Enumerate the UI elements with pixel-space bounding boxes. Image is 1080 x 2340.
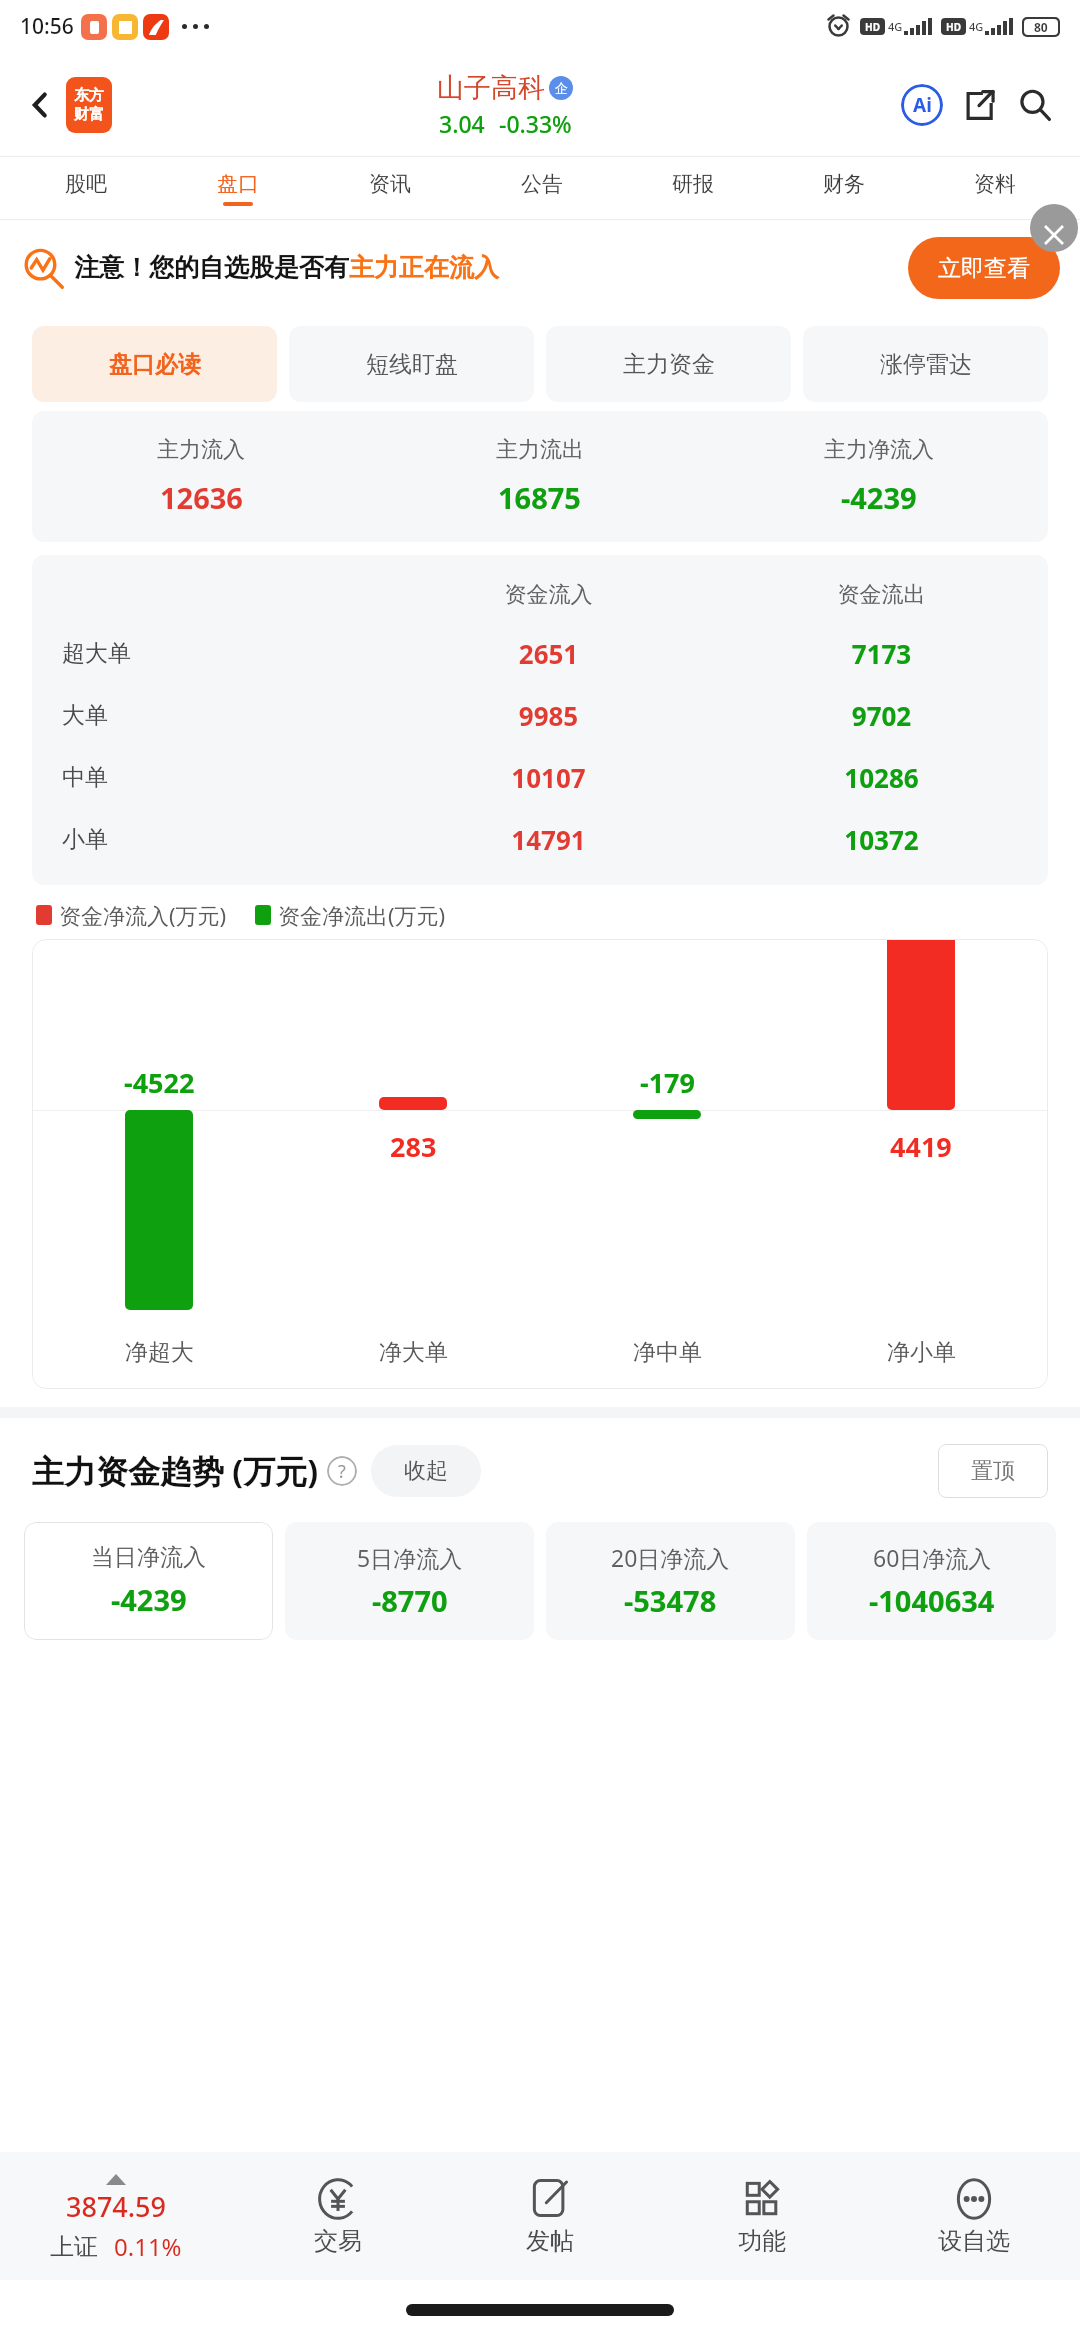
- staticText: 净大单: [379, 1338, 448, 1367]
- button[interactable]: 资讯: [314, 157, 466, 220]
- button[interactable]: 盘口: [162, 157, 314, 220]
- staticText: HD: [865, 20, 880, 34]
- button[interactable]: Help: [327, 1456, 357, 1486]
- button[interactable]: 超大单: [32, 636, 1048, 671]
- staticText: 主力正在流入: [349, 252, 499, 283]
- staticText: 资金流出: [715, 581, 1048, 609]
- button[interactable]: Search: [1012, 82, 1058, 128]
- button[interactable]: 大单: [32, 698, 1048, 733]
- button[interactable]: 短线盯盘: [289, 326, 534, 402]
- button[interactable]: 主力资金: [546, 326, 791, 402]
- staticText: 主力资金: [623, 350, 715, 379]
- button[interactable]: 主力流入: [32, 436, 1048, 517]
- staticText: 12636: [160, 478, 243, 517]
- staticText: 283: [390, 1128, 437, 1165]
- staticText: 股吧: [65, 171, 107, 197]
- staticText: 4419: [890, 1128, 952, 1165]
- button[interactable]: 立即查看: [908, 237, 1060, 299]
- staticText: 0.11%: [114, 2230, 182, 2263]
- staticText: 东方: [74, 86, 104, 105]
- staticText: ?: [338, 1459, 346, 1484]
- button[interactable]: Back: [18, 83, 62, 127]
- staticText: 20日净流入: [611, 1542, 730, 1573]
- button[interactable]: 资料: [919, 157, 1070, 220]
- button[interactable]: 盘口必读: [32, 326, 277, 402]
- button[interactable]: 3874.59: [0, 2152, 232, 2280]
- button[interactable]: 功能: [656, 2152, 868, 2280]
- staticText: 净超大: [125, 1338, 194, 1367]
- staticText: 4G: [888, 19, 903, 34]
- staticText: 收起: [404, 1457, 448, 1485]
- button[interactable]: 当日净流入: [24, 1522, 273, 1640]
- staticText: Ai: [913, 92, 932, 118]
- staticText: -4522: [124, 1064, 195, 1101]
- staticText: 盘口必读: [109, 350, 201, 379]
- staticText: 10:56: [20, 12, 74, 41]
- staticText: 60日净流入: [873, 1542, 992, 1573]
- button[interactable]: 小单: [32, 822, 1048, 857]
- button[interactable]: East Money: [66, 77, 112, 133]
- button[interactable]: 注意！您的自选股是否有: [22, 220, 1060, 315]
- staticText: 小单: [62, 825, 382, 854]
- staticText: 16875: [498, 478, 581, 517]
- button[interactable]: 设自选: [868, 2152, 1080, 2280]
- button[interactable]: 中单: [32, 760, 1048, 795]
- button[interactable]: 20日净流入: [546, 1522, 795, 1640]
- staticText: -4239: [111, 1580, 187, 1619]
- button[interactable]: 置顶: [938, 1444, 1048, 1498]
- staticText: 9985: [382, 698, 715, 733]
- button[interactable]: 60日净流入: [807, 1522, 1056, 1640]
- staticText: 涨停雷达: [880, 350, 972, 379]
- button[interactable]: 涨停雷达: [803, 326, 1048, 402]
- button[interactable]: 股吧: [10, 157, 162, 220]
- staticText: 交易: [314, 2226, 362, 2256]
- staticText: -4239: [841, 478, 917, 517]
- button[interactable]: -4522: [32, 939, 1048, 1389]
- staticText: 设自选: [938, 2226, 1010, 2256]
- staticText: -8770: [372, 1581, 448, 1620]
- staticText: 3.04: [439, 108, 485, 139]
- button[interactable]: AI: [898, 81, 946, 129]
- staticText: 短线盯盘: [366, 350, 458, 379]
- staticText: 立即查看: [938, 254, 1030, 283]
- button[interactable]: 财务: [768, 157, 919, 220]
- staticText: 财富: [74, 105, 104, 124]
- staticText: 资讯: [369, 171, 411, 197]
- button[interactable]: 收起: [371, 1445, 481, 1497]
- staticText: 置顶: [971, 1457, 1015, 1485]
- staticText: 超大单: [62, 639, 382, 668]
- staticText: 资金净流出(万元): [278, 900, 446, 930]
- staticText: 主力资金趋势 (万元): [32, 1449, 319, 1493]
- button[interactable]: 5日净流入: [285, 1522, 534, 1640]
- staticText: 当日净流入: [91, 1543, 206, 1572]
- staticText: 主力流出: [496, 436, 584, 464]
- staticText: 发帖: [526, 2226, 574, 2256]
- staticText: 10286: [715, 760, 1048, 795]
- staticText: 山子高科: [437, 71, 545, 105]
- staticText: 4G: [969, 19, 984, 34]
- staticText: -0.33%: [499, 108, 572, 139]
- staticText: 净中单: [633, 1338, 702, 1367]
- staticText: 研报: [672, 171, 714, 197]
- button[interactable]: Share: [956, 82, 1002, 128]
- button[interactable]: 公告: [466, 157, 617, 220]
- staticText: 净小单: [887, 1338, 956, 1367]
- staticText: 上证: [50, 2232, 98, 2262]
- staticText: 财务: [823, 171, 865, 197]
- staticText: 资金净流入(万元): [59, 900, 227, 930]
- staticText: 企: [555, 80, 568, 96]
- staticText: 10372: [715, 822, 1048, 857]
- staticText: HD: [946, 20, 961, 34]
- staticText: -53478: [624, 1581, 717, 1620]
- button[interactable]: Close: [1030, 204, 1078, 252]
- staticText: 9702: [715, 698, 1048, 733]
- staticText: 14791: [382, 822, 715, 857]
- button[interactable]: 发帖: [444, 2152, 656, 2280]
- staticText: 功能: [738, 2226, 786, 2256]
- staticText: 80: [1034, 19, 1048, 35]
- staticText: 公告: [521, 171, 563, 197]
- button[interactable]: 交易: [232, 2152, 444, 2280]
- staticText: 10107: [382, 760, 715, 795]
- button[interactable]: 研报: [617, 157, 768, 220]
- staticText: 5日净流入: [357, 1542, 463, 1573]
